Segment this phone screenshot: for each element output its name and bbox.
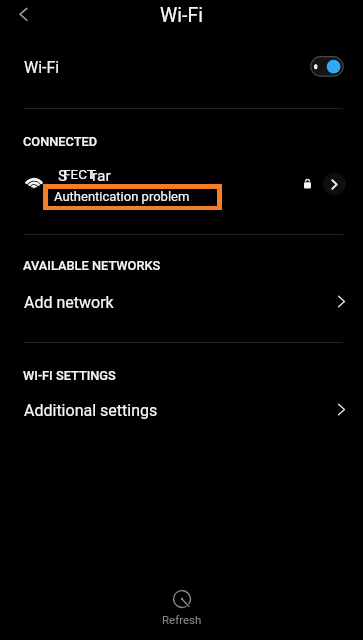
button[interactable]: Additional settings xyxy=(0,390,363,434)
staticText: S xyxy=(58,167,68,185)
staticText: FECT xyxy=(63,166,95,182)
staticText: Wi-Fi xyxy=(0,4,363,27)
staticText: CONNECTED xyxy=(23,134,98,149)
button[interactable]: Back xyxy=(9,0,37,28)
button[interactable]: Add network xyxy=(0,282,363,326)
staticText: AVAILABLE NETWORKS xyxy=(23,258,161,273)
button[interactable]: Network details xyxy=(313,162,356,205)
button[interactable]: Refresh xyxy=(150,585,213,633)
staticText: Wi-Fi xyxy=(24,58,60,77)
staticText: rar xyxy=(92,167,111,185)
staticText: WI-FI SETTINGS xyxy=(23,368,116,383)
staticText: Add network xyxy=(24,293,114,312)
button[interactable]: Wi-Fi xyxy=(0,40,363,94)
staticText: Refresh xyxy=(162,613,202,626)
button[interactable]: S xyxy=(0,156,363,218)
staticText: T xyxy=(88,166,97,182)
staticText: Authentication problem xyxy=(54,189,190,204)
staticText: Additional settings xyxy=(24,401,158,420)
